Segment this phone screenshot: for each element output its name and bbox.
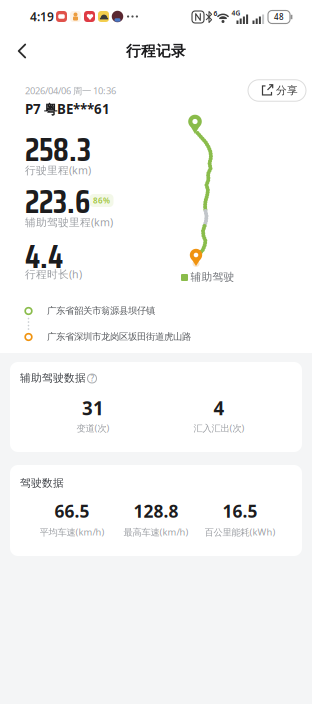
staticText: 广东省韶关市翁源县坝仔镇 <box>47 305 155 316</box>
staticText: 分享 <box>276 84 298 97</box>
staticText: 31 <box>82 396 104 420</box>
staticText: ? <box>90 373 93 384</box>
staticText: 6 <box>213 9 217 18</box>
staticText: 4:19 <box>30 8 54 24</box>
staticText: 平均车速(km/h) <box>39 526 104 538</box>
staticText: 辅助驾驶 <box>190 270 234 284</box>
staticText: 辅助驾驶数据 <box>20 371 86 385</box>
staticText: 行驶里程(km) <box>25 163 91 177</box>
staticText: 2026/04/06 周一 10:36 <box>25 84 116 97</box>
staticText: 最高车速(km/h) <box>123 526 188 538</box>
staticText: 16.5 <box>222 499 257 522</box>
staticText: 66.5 <box>54 499 89 522</box>
staticText: 行程时长(h) <box>25 267 82 281</box>
staticText: P7 粤BE***61 <box>25 100 110 118</box>
staticText: 变道(次) <box>76 422 109 434</box>
staticText: 48 <box>274 12 284 22</box>
staticText: 128.8 <box>133 499 178 522</box>
button[interactable] <box>7 36 37 66</box>
staticText: 4 <box>213 396 224 420</box>
staticText: 辅助驾驶里程(km) <box>25 215 113 229</box>
staticText: 4.4 <box>25 232 63 282</box>
button[interactable]: ? <box>85 372 98 385</box>
staticText: 4G <box>231 9 240 17</box>
staticText: 驾驶数据 <box>20 476 64 490</box>
button[interactable]: 分享 <box>248 80 306 101</box>
staticText: 223.6 <box>25 177 90 227</box>
staticText: 行程记录 <box>126 42 186 60</box>
staticText: 258.3 <box>25 125 91 175</box>
staticText: 百公里能耗(kWh) <box>204 526 275 538</box>
staticText: 86% <box>93 195 110 206</box>
staticText: 汇入汇出(次) <box>193 422 244 434</box>
staticText: 广东省深圳市龙岗区坂田街道虎山路 <box>47 331 191 342</box>
